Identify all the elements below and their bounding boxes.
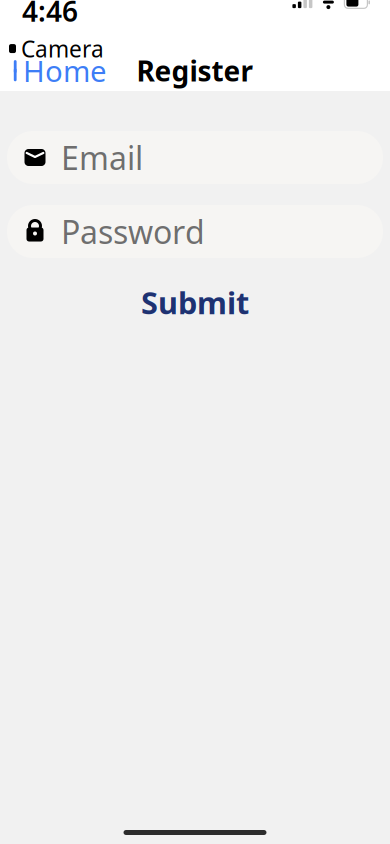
staticText: Submit — [141, 282, 249, 323]
button[interactable]: Return to Camera — [0, 31, 104, 66]
button[interactable]: Password — [7, 205, 383, 258]
staticText: 4:46 — [22, 0, 78, 30]
staticText: Email — [61, 136, 143, 179]
staticText: Register — [136, 52, 253, 89]
staticText: Home — [23, 51, 107, 90]
button[interactable]: Submit — [7, 272, 383, 333]
button[interactable]: Email — [7, 131, 383, 184]
staticText: Password — [61, 210, 205, 253]
staticText: Camera — [21, 33, 104, 64]
button[interactable]: Home — [0, 45, 115, 96]
